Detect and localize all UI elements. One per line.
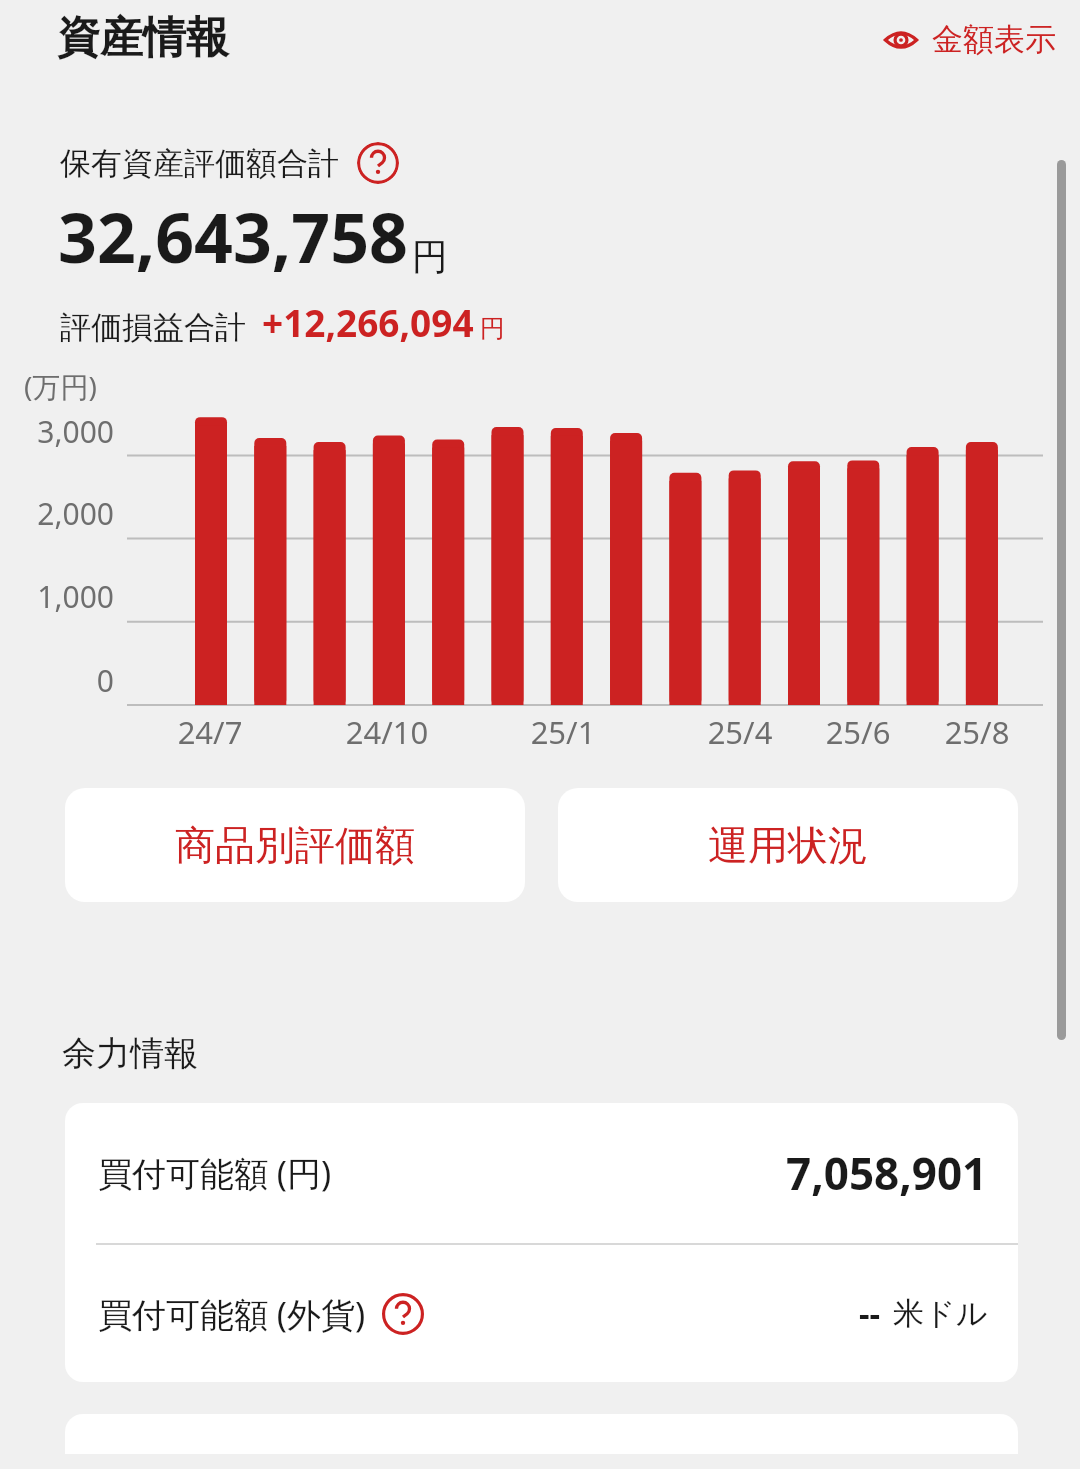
button[interactable]: 運用状況 (558, 788, 1018, 902)
staticText: 運用状況 (708, 820, 868, 870)
staticText: 24/7 (145, 711, 275, 753)
staticText: (万円) (24, 367, 97, 405)
staticText: 24/10 (322, 711, 452, 753)
staticText: 買付可能額 (円) (98, 1150, 332, 1196)
staticText: +12,266,094 (262, 297, 474, 347)
staticText: 0 (12, 660, 114, 701)
staticText: 25/6 (793, 711, 923, 753)
staticText: 円 (480, 313, 505, 344)
button[interactable]: 買付可能額 (円) (65, 1103, 1018, 1243)
button[interactable]: 商品別評価額 (65, 788, 525, 902)
staticText: 32,643,758 (58, 190, 408, 283)
staticText: 評価損益合計 (60, 308, 246, 347)
staticText: 商品別評価額 (175, 820, 415, 870)
staticText: 1,000 (12, 576, 114, 617)
staticText: 3,000 (12, 411, 114, 452)
staticText: 25/4 (675, 711, 805, 753)
staticText: 円 (412, 234, 448, 279)
staticText: 金額表示 (932, 20, 1056, 59)
button[interactable]: 買付可能額 (外貨) (65, 1245, 1018, 1382)
staticText: 買付可能額 (外貨) (98, 1291, 366, 1337)
staticText: 米ドル (893, 1294, 988, 1333)
button[interactable]: 金額表示 (874, 14, 1080, 65)
staticText: 25/1 (498, 711, 628, 753)
button[interactable]: 保有資産評価額合計の説明 (357, 142, 399, 184)
staticText: 2,000 (12, 493, 114, 534)
staticText: 資産情報 (57, 11, 229, 65)
staticText: 保有資産評価額合計 (60, 144, 339, 183)
staticText: 7,058,901 (786, 1143, 988, 1203)
staticText: -- (859, 1291, 881, 1336)
staticText: 25/8 (912, 711, 1042, 753)
staticText: 余力情報 (62, 1032, 198, 1075)
